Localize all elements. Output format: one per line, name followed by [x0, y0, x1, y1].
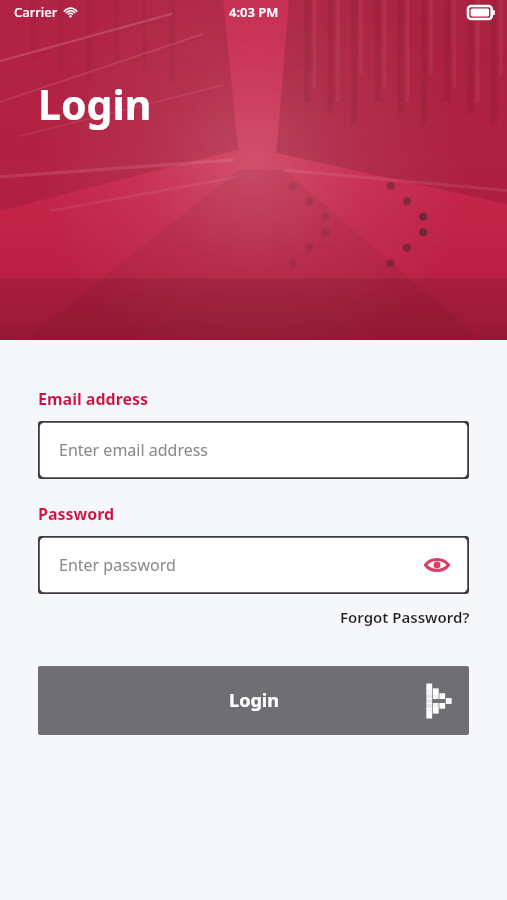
staticText: Email address: [38, 388, 149, 410]
button[interactable]: Enter email address: [38, 421, 469, 479]
staticText: Enter email address: [59, 439, 209, 461]
staticText: 4:03 PM: [229, 3, 279, 21]
button[interactable]: Login: [38, 666, 469, 735]
staticText: Carrier: [14, 3, 58, 21]
staticText: Enter password: [59, 554, 176, 576]
staticText: Password: [38, 503, 115, 525]
button[interactable]: Enter password: [38, 536, 469, 594]
staticText: Login: [229, 688, 279, 713]
button[interactable]: Forgot Password?: [340, 607, 470, 627]
button[interactable]: Show password: [422, 550, 452, 580]
staticText: Login: [38, 76, 152, 132]
staticText: Forgot Password?: [340, 607, 470, 627]
